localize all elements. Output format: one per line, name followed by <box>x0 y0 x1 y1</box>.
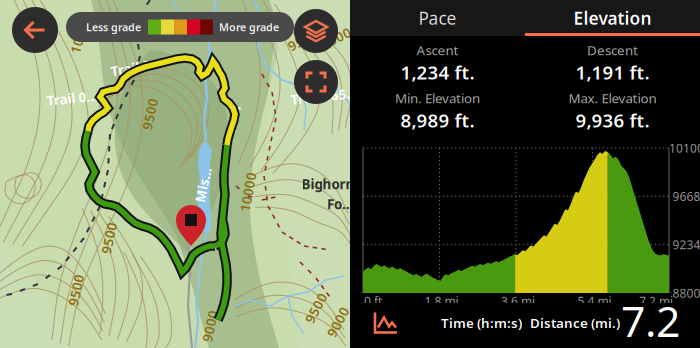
button[interactable]: Chart <box>368 306 404 340</box>
staticText: Fo… <box>327 195 353 213</box>
staticText: 7.2 <box>621 292 680 348</box>
staticText: Trail <box>218 111 247 129</box>
staticText: Distance (mi.) <box>530 314 620 332</box>
staticText: 1.8 mi. <box>424 293 461 309</box>
staticText: 1,234 ft. <box>400 60 474 85</box>
staticText: More grade <box>219 20 279 34</box>
button[interactable]: Pace <box>350 0 525 36</box>
staticText: 1,191 ft. <box>575 60 649 85</box>
staticText: 10100 <box>669 140 700 156</box>
staticText: Min. Elevation <box>395 89 480 107</box>
staticText: 9000 <box>194 317 226 335</box>
staticText: 8,989 ft. <box>400 108 474 133</box>
staticText: 9500 <box>320 29 352 47</box>
button[interactable]: Full screen <box>294 60 338 104</box>
staticText: Bighorn <box>301 175 354 193</box>
staticText: Pace <box>418 6 456 29</box>
staticText: Trail 065… <box>290 87 357 105</box>
staticText: 3.6 mi. <box>501 293 538 309</box>
staticText: Max. Elevation <box>568 89 656 107</box>
button[interactable]: Map layers <box>294 9 338 53</box>
staticText: Time (h:m:s) <box>441 314 522 332</box>
staticText: 0 ft. <box>364 293 385 309</box>
staticText: 9500 <box>287 31 319 49</box>
staticText: 5.4 mi. <box>577 293 614 309</box>
staticText: 8800 <box>672 285 700 301</box>
staticText: 9,936 ft. <box>575 108 649 133</box>
staticText: Mis… <box>185 176 220 194</box>
staticText: Ascent <box>416 41 458 59</box>
staticText: Descent <box>587 41 638 59</box>
staticText: 9500 <box>93 229 125 247</box>
staticText: 10000 <box>228 183 268 201</box>
staticText: 9668 <box>672 188 700 204</box>
staticText: Elevation <box>573 6 651 29</box>
staticText: 9500 <box>60 281 92 299</box>
button[interactable]: Elevation <box>525 0 700 36</box>
staticText: Less grade <box>86 20 141 34</box>
staticText: Trail 0… <box>46 89 97 107</box>
staticText: 9000 <box>322 313 354 331</box>
staticText: 9234 <box>672 237 700 253</box>
staticText: 9500 <box>134 105 166 123</box>
staticText: 7.2 mi. <box>639 293 676 309</box>
staticText: 10000 <box>60 25 100 43</box>
button[interactable]: Back <box>12 7 58 53</box>
staticText: Trail 0… <box>110 58 161 76</box>
staticText: 9500 <box>300 299 332 317</box>
